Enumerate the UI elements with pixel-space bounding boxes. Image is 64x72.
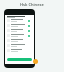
button[interactable]	[7, 28, 32, 33]
button[interactable]	[7, 23, 32, 28]
button[interactable]	[7, 48, 32, 53]
button[interactable]	[7, 43, 32, 48]
button[interactable]	[7, 38, 32, 43]
button[interactable]	[7, 58, 32, 61]
staticText: Hsk Chinese	[20, 2, 44, 7]
button[interactable]: Add	[33, 59, 38, 64]
button[interactable]	[7, 18, 32, 23]
button[interactable]	[7, 33, 32, 38]
